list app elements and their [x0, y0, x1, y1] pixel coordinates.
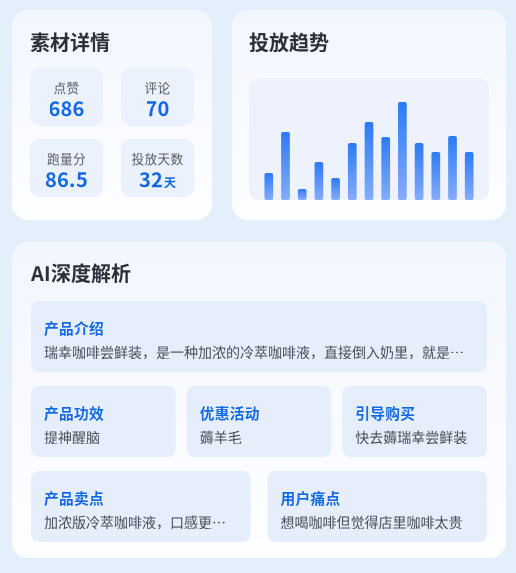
staticText: 686 — [48, 93, 84, 122]
staticText: 优惠活动 — [200, 402, 260, 423]
staticText: 跑量分 — [47, 149, 86, 167]
staticText: 产品卖点 — [44, 487, 104, 508]
staticText: 用户痛点 — [280, 487, 340, 508]
staticText: 加浓版冷萃咖啡液，口感更… — [44, 511, 226, 531]
staticText: 提神醒脑 — [44, 426, 100, 446]
staticText: 32 — [139, 164, 163, 193]
button[interactable]: 引导购买 — [342, 386, 487, 457]
button[interactable]: 产品功效 — [31, 386, 176, 457]
button[interactable]: 跑量分 — [30, 139, 103, 197]
staticText: 素材详情 — [30, 27, 110, 56]
staticText: 引导购买 — [355, 402, 415, 423]
button[interactable]: 用户痛点 — [267, 471, 487, 542]
staticText: 投放天数 — [131, 149, 183, 167]
staticText: 投放趋势 — [249, 27, 329, 56]
staticText: 天 — [164, 173, 176, 191]
button[interactable]: 投放天数 — [121, 139, 194, 197]
button[interactable]: 点赞 — [30, 68, 103, 126]
staticText: 瑞幸咖啡尝鲜装，是一种加浓的冷萃咖啡液，直接倒入奶里，就是一… — [44, 341, 474, 361]
staticText: 评论 — [144, 78, 170, 96]
staticText: 86.5 — [45, 164, 88, 193]
staticText: AI深度解析 — [31, 258, 131, 287]
button[interactable]: 产品卖点 — [31, 471, 250, 542]
staticText: 产品介绍 — [44, 317, 104, 338]
button[interactable]: 优惠活动 — [187, 386, 331, 457]
staticText: 薅羊毛 — [200, 426, 242, 446]
button[interactable]: 产品介绍 — [31, 301, 487, 372]
button[interactable]: 评论 — [121, 68, 194, 126]
staticText: 点赞 — [53, 78, 79, 96]
staticText: 快去薅瑞幸尝鲜装 — [355, 426, 467, 446]
staticText: 想喝咖啡但觉得店里咖啡太贵 — [280, 511, 462, 531]
staticText: 产品功效 — [44, 402, 104, 423]
staticText: 70 — [145, 93, 169, 122]
